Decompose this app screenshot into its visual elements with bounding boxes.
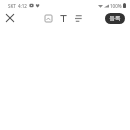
button[interactable]: Insert image <box>43 13 54 24</box>
button[interactable]: Text style <box>58 13 69 24</box>
button[interactable]: Alignment <box>73 13 84 24</box>
staticText: 100% <box>110 3 122 9</box>
button[interactable]: Close <box>5 13 15 23</box>
button[interactable]: 등록 <box>105 13 125 24</box>
staticText: SKT <box>8 3 16 9</box>
staticText: 등록 <box>109 15 121 22</box>
staticText: 4:12 <box>18 3 27 9</box>
